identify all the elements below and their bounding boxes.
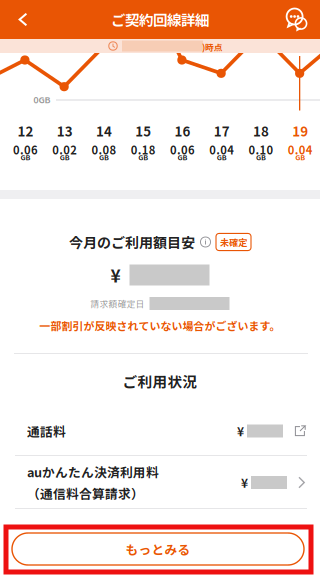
- staticText: 19: [292, 121, 308, 140]
- button[interactable]: もっとみる: [12, 533, 304, 565]
- staticText: 0.06: [13, 141, 38, 158]
- button[interactable]: Chat support: [274, 0, 320, 39]
- staticText: ご利用状況: [122, 370, 197, 392]
- staticText: 0.02: [52, 141, 77, 158]
- button[interactable]: auかんたん決済利用料: [0, 456, 320, 509]
- staticText: 12: [17, 121, 33, 140]
- staticText: 14: [96, 121, 112, 140]
- staticText: ¥: [110, 262, 120, 288]
- staticText: 0.04: [209, 141, 234, 158]
- staticText: GB: [256, 152, 266, 162]
- staticText: 請求額確定日: [90, 297, 144, 310]
- button[interactable]: Back: [0, 0, 46, 39]
- staticText: 0.06: [170, 141, 195, 158]
- staticText: ¥: [237, 422, 244, 440]
- staticText: 13: [57, 121, 73, 140]
- staticText: GB: [138, 152, 148, 162]
- staticText: 未確定: [220, 235, 247, 248]
- staticText: 通話料: [27, 422, 66, 440]
- staticText: 16: [174, 121, 190, 140]
- staticText: GB: [177, 152, 187, 162]
- staticText: 0.04: [288, 141, 313, 158]
- staticText: 一部割引が反映されていない場合がございます。: [39, 318, 280, 333]
- staticText: もっとみる: [125, 540, 190, 558]
- staticText: GB: [20, 152, 30, 162]
- staticText: 18: [253, 121, 269, 140]
- staticText: GB: [60, 152, 70, 162]
- staticText: （通信料合算請求）: [27, 484, 144, 502]
- staticText: 17: [214, 121, 230, 140]
- staticText: 0.18: [131, 141, 156, 158]
- staticText: GB: [217, 152, 227, 162]
- button[interactable]: 通話料: [0, 406, 320, 456]
- staticText: 今月のご利用額目安: [69, 232, 195, 252]
- staticText: GB: [295, 152, 305, 162]
- staticText: ご契約回線詳細: [111, 9, 209, 30]
- staticText: 0.08: [91, 141, 116, 158]
- staticText: auかんたん決済利用料: [27, 463, 159, 481]
- staticText: 0GB: [33, 93, 50, 106]
- staticText: )時点: [202, 40, 223, 53]
- staticText: GB: [99, 152, 109, 162]
- staticText: 15: [135, 121, 151, 140]
- staticText: 0.10: [248, 141, 273, 158]
- staticText: ¥: [241, 474, 248, 491]
